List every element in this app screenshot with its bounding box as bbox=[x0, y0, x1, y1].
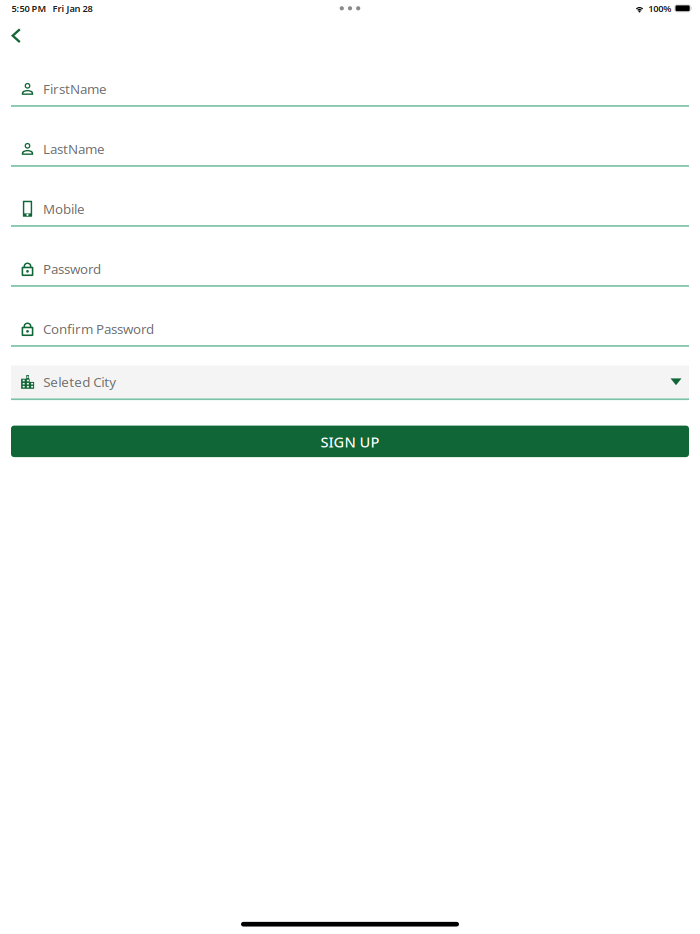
button[interactable]: SIGN UP bbox=[11, 426, 689, 457]
staticText: Fri Jan 28 bbox=[52, 2, 92, 14]
staticText: 100% bbox=[648, 2, 671, 14]
staticText: LastName bbox=[43, 140, 105, 158]
staticText: Password bbox=[43, 260, 101, 278]
button[interactable]: Back bbox=[0, 16, 35, 47]
staticText: Mobile bbox=[43, 200, 85, 218]
staticText: SIGN UP bbox=[320, 432, 379, 452]
staticText: Seleted City bbox=[43, 373, 116, 391]
staticText: FirstName bbox=[43, 80, 107, 98]
button[interactable]: Seleted City bbox=[11, 365, 689, 400]
staticText: 5:50 PM bbox=[11, 2, 46, 14]
staticText: Confirm Password bbox=[43, 320, 154, 338]
